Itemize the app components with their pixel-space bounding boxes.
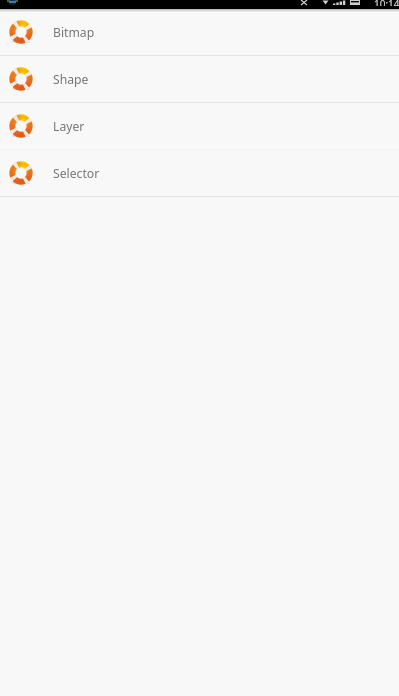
button[interactable]: Bitmap — [0, 9, 399, 56]
button[interactable]: Shape — [0, 56, 399, 103]
button[interactable]: Selector — [0, 150, 399, 197]
staticText: Layer — [53, 118, 85, 135]
staticText: Selector — [53, 165, 100, 182]
other: Status bar — [0, 0, 399, 9]
staticText: Shape — [53, 71, 89, 88]
staticText: 10:14 — [374, 0, 399, 6]
button[interactable]: Layer — [0, 103, 399, 150]
staticText: Bitmap — [53, 24, 95, 41]
